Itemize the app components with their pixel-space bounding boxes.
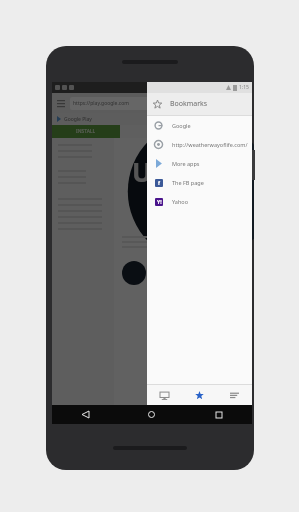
staticText: Y! [157,199,162,206]
button[interactable]: Back [52,405,118,424]
button[interactable]: More apps [147,154,252,173]
button[interactable]: Bookmarks [182,385,217,405]
button[interactable]: Google [147,116,252,135]
button[interactable]: f [147,173,252,192]
button[interactable]: Recent tabs [147,385,182,405]
staticText: f [158,180,160,187]
button[interactable]: Home [118,405,185,424]
staticText: UP [132,154,168,189]
staticText: 1:15 [239,84,249,91]
staticText: Yahoo [172,198,188,205]
staticText: http://weatherwayoflife.com/ [172,141,248,148]
staticText: Bookmarks [170,99,208,109]
button[interactable]: History [217,385,252,405]
staticText: https://play.google.com [73,100,129,107]
staticText: More apps [172,160,200,167]
button[interactable]: http://weatherwayoflife.com/ [147,135,252,154]
staticText: The FB page [172,179,204,186]
staticText: INSTALL [76,128,96,135]
button[interactable]: Bookmarks [147,93,252,115]
button[interactable]: Y! [147,192,252,211]
staticText: Google [172,122,191,129]
staticText: Google Play [64,116,92,123]
button[interactable]: Recents [185,405,252,424]
